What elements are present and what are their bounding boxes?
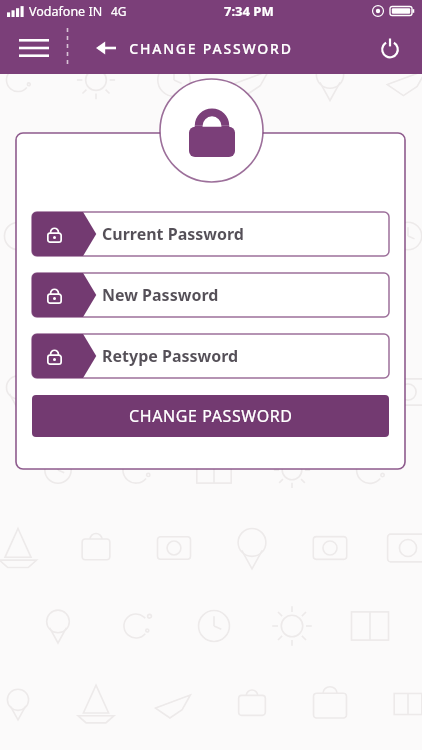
staticText: 4G — [111, 3, 127, 19]
staticText: CHANGE PASSWORD — [129, 39, 293, 58]
staticText: CHANGE PASSWORD — [129, 405, 293, 427]
button[interactable]: Menu — [12, 26, 56, 70]
button[interactable]: Retype Password — [32, 334, 389, 378]
button[interactable]: Current Password — [32, 212, 389, 256]
button[interactable]: New Password — [32, 273, 389, 317]
button[interactable]: CHANGE PASSWORD — [32, 395, 389, 437]
staticText: Retype Password — [102, 345, 239, 367]
staticText: 7:34 PM — [224, 2, 274, 20]
staticText: Vodafone IN — [29, 3, 103, 20]
button[interactable]: Logout — [368, 26, 412, 70]
button[interactable]: Back — [84, 26, 128, 70]
staticText: New Password — [102, 284, 219, 306]
staticText: Current Password — [102, 223, 244, 245]
